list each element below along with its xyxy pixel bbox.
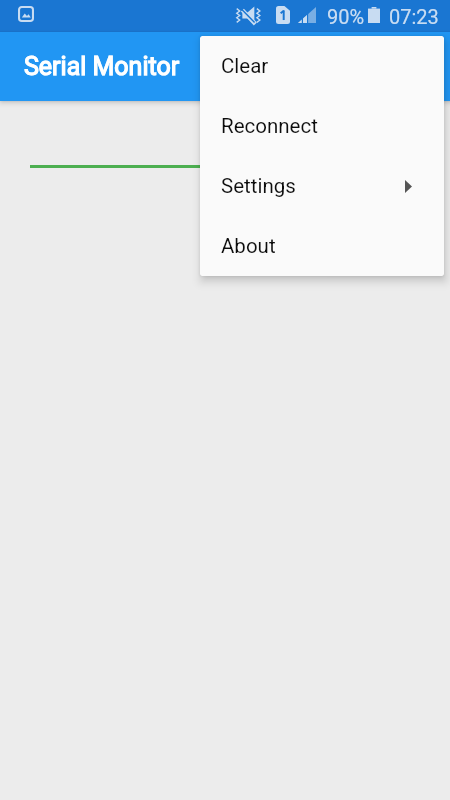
staticText: Clear xyxy=(221,54,269,78)
staticText: Serial Monitor xyxy=(24,52,180,81)
staticText: Reconnect xyxy=(221,114,318,138)
button[interactable]: Settings xyxy=(200,156,444,216)
staticText: Settings xyxy=(221,174,296,198)
staticText: 90% xyxy=(327,5,365,28)
other: Screenshot xyxy=(18,6,34,23)
staticText: About xyxy=(221,234,276,258)
staticText: Serial Monitor xyxy=(24,52,180,81)
button[interactable]: About xyxy=(200,216,444,276)
staticText: 07:23 xyxy=(389,5,439,28)
button[interactable]: Reconnect xyxy=(200,96,444,156)
button[interactable]: Clear xyxy=(200,36,444,96)
